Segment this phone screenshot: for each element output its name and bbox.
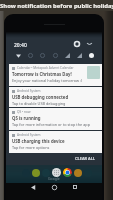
staticText: Tap for more options: [12, 145, 50, 150]
staticText: Android System: [17, 133, 41, 137]
staticText: USB charging this device: [12, 138, 65, 144]
button[interactable]: Data saver: [75, 51, 84, 60]
staticText: QS • now: [17, 110, 31, 114]
button[interactable]: Auto rotate: [87, 51, 96, 60]
button[interactable]: Battery saver: [63, 51, 72, 60]
staticText: CLEAR ALL: [75, 156, 95, 161]
button[interactable]: Calendar • Metapack Advent Calendar: [9, 64, 102, 86]
button[interactable]: Play Store: [74, 169, 82, 177]
button[interactable]: All apps: [52, 168, 61, 177]
button[interactable]: QS • now: [9, 108, 102, 130]
staticText: Calendar • Metapack Advent Calendar: [17, 66, 74, 70]
staticText: Tap for more information or to stop the …: [12, 122, 91, 127]
button[interactable]: Chrome: [63, 168, 72, 177]
button[interactable]: Do not disturb: [38, 51, 47, 60]
staticText: Enjoy your national holiday tomorrow :): [12, 78, 83, 83]
staticText: 20:40: [14, 42, 27, 49]
staticText: QS is running: [12, 115, 41, 121]
button[interactable]: Recents: [70, 183, 79, 191]
button[interactable]: Bluetooth: [26, 51, 35, 60]
staticText: Tap to disable USB debugging: [12, 101, 66, 106]
button[interactable]: CLEAR ALL: [72, 155, 98, 162]
button[interactable]: Android System: [9, 87, 102, 107]
staticText: USB debugging connected: [12, 94, 69, 100]
button[interactable]: Settings: [72, 39, 81, 48]
button[interactable]: Messages: [32, 169, 40, 177]
staticText: Google: [48, 176, 60, 181]
button[interactable]: Back: [29, 183, 38, 191]
button[interactable]: Expand: [85, 39, 94, 48]
staticText: Tomorrow is Christmas Day!: [12, 71, 72, 77]
button[interactable]: Home: [50, 183, 59, 191]
staticText: Android System: [17, 89, 41, 93]
button[interactable]: Flashlight: [51, 51, 60, 60]
button[interactable]: Wi-Fi: [14, 51, 23, 60]
staticText: Show notification before public holiday: [0, 2, 113, 10]
button[interactable]: Android System: [9, 131, 102, 153]
